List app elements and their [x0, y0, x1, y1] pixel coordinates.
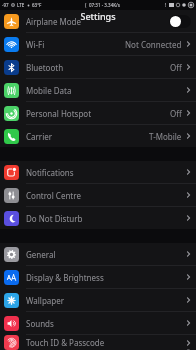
staticText: T-Mobile	[149, 131, 182, 142]
button[interactable]: Carrier	[0, 125, 196, 147]
button[interactable]: Airplane Mode	[0, 10, 196, 33]
staticText: Mobile Data	[26, 85, 72, 96]
staticText: Not Connected	[125, 39, 182, 50]
staticText: Notifications	[26, 167, 74, 178]
staticText: Wi-Fi	[26, 39, 45, 50]
staticText: Off	[170, 62, 182, 73]
button[interactable]: General	[0, 243, 196, 266]
staticText: Wallpaper	[26, 295, 65, 306]
staticText: Carrier	[26, 131, 53, 142]
button[interactable]: Mobile Data	[0, 79, 196, 102]
button[interactable]: Wi-Fi	[0, 33, 196, 56]
staticText: 63°F	[32, 2, 42, 8]
button[interactable]: Do Not Disturb	[0, 207, 196, 229]
staticText: Control Centre	[26, 190, 81, 201]
staticText: LTE	[17, 2, 25, 8]
button[interactable]: Control Centre	[0, 184, 196, 207]
button[interactable]: Touch ID & Passcode	[0, 335, 196, 350]
staticText: Sounds	[26, 318, 54, 329]
button[interactable]: Bluetooth	[0, 56, 196, 79]
staticText: General	[26, 249, 56, 260]
staticText: Bluetooth	[26, 62, 64, 73]
staticText: -97	[2, 2, 9, 8]
staticText: Off	[170, 108, 182, 119]
staticText: Display & Brightness	[26, 272, 104, 283]
staticText: Settings	[0, 10, 196, 22]
staticText: Personal Hotspot	[26, 108, 92, 119]
button[interactable]: Wallpaper	[0, 289, 196, 312]
button[interactable]: Sounds	[0, 312, 196, 335]
staticText: !	[165, 2, 167, 8]
button[interactable]: Notifications	[0, 161, 196, 184]
staticText: Do Not Disturb	[26, 213, 83, 224]
button[interactable]: Display & Brightness	[0, 266, 196, 289]
other: Airplane Mode toggle	[169, 15, 191, 28]
staticText: 07:31 - 3.34K/s	[89, 2, 121, 8]
button[interactable]: Personal Hotspot	[0, 102, 196, 125]
staticText: Touch ID & Passcode	[26, 337, 105, 348]
staticText: (	[85, 2, 87, 8]
staticText: Airplane Mode	[26, 16, 82, 27]
